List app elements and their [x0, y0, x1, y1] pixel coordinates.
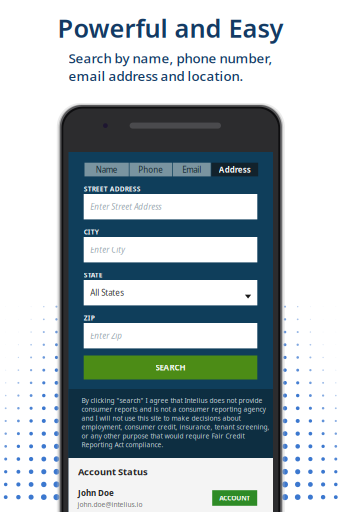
- staticText: CITY: [84, 228, 99, 236]
- staticText: Search by name, phone number, email addr…: [68, 49, 272, 85]
- button[interactable]: Name: [84, 163, 129, 176]
- staticText: Enter Street Address: [90, 201, 161, 212]
- button[interactable]: Phone: [129, 163, 172, 176]
- staticText: Email: [182, 164, 201, 175]
- staticText: John Doe: [78, 487, 114, 498]
- staticText: john.doe@intelius.io: [77, 500, 142, 509]
- staticText: Enter Zip: [90, 330, 122, 341]
- staticText: STREET ADDRESS: [84, 185, 141, 193]
- button[interactable]: ACCOUNT: [212, 490, 257, 506]
- button[interactable]: SEARCH: [84, 355, 257, 379]
- staticText: By clicking "search" I agree that Inteli…: [81, 396, 269, 449]
- button[interactable]: Email: [173, 163, 211, 176]
- staticText: Name: [96, 164, 118, 175]
- staticText: Account Status: [78, 465, 148, 478]
- staticText: Enter City: [90, 244, 125, 255]
- staticText: SEARCH: [155, 362, 185, 373]
- staticText: ACCOUNT: [219, 494, 250, 502]
- staticText: Powerful and Easy: [57, 11, 283, 45]
- staticText: Address: [219, 164, 251, 175]
- staticText: STATE: [84, 271, 103, 279]
- staticText: ZIP: [84, 314, 95, 322]
- staticText: All States: [90, 287, 124, 298]
- staticText: Phone: [138, 164, 163, 175]
- button[interactable]: Address: [211, 163, 258, 176]
